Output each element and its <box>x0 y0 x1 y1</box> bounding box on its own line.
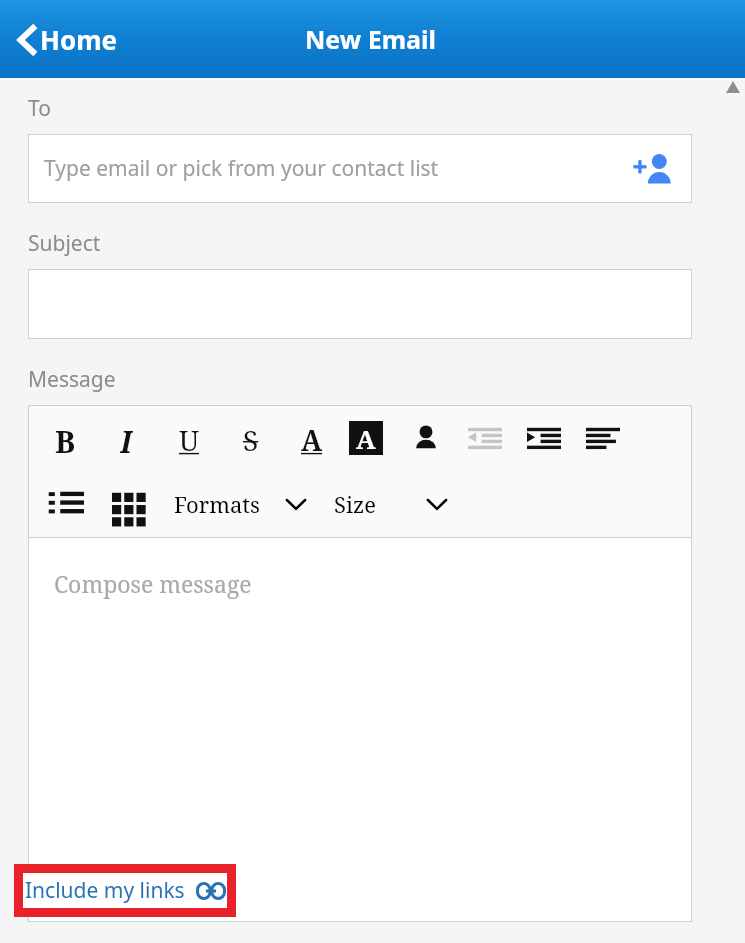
staticText: I <box>120 421 133 455</box>
staticText: Subject <box>28 229 101 258</box>
staticText: B <box>55 421 76 455</box>
button[interactable]: Type email or pick from your contact lis… <box>28 134 692 203</box>
button[interactable]: Align left <box>586 421 620 455</box>
staticText: Type email or pick from your contact lis… <box>44 154 439 183</box>
staticText: U <box>179 421 200 455</box>
staticText: New Email <box>305 22 436 56</box>
staticText: Size <box>334 489 377 519</box>
staticText: S <box>243 421 259 455</box>
button[interactable]: Outdent <box>468 421 502 455</box>
staticText: Include my links <box>25 876 185 905</box>
button[interactable]: Insert person <box>409 421 443 455</box>
button[interactable]: Size <box>334 489 449 519</box>
button[interactable]: Strikethrough <box>234 421 268 455</box>
staticText: Compose message <box>54 568 252 599</box>
staticText: To <box>28 94 51 123</box>
button[interactable]: Pick contact <box>632 147 676 191</box>
button[interactable]: Table <box>112 487 146 521</box>
staticText: A <box>301 421 323 455</box>
staticText: Message <box>28 365 116 394</box>
button[interactable] <box>28 269 692 339</box>
button[interactable]: Bold <box>48 421 82 455</box>
staticText: Formats <box>174 489 260 519</box>
button[interactable]: Italic <box>109 421 143 455</box>
button[interactable]: Highlight <box>349 421 383 455</box>
button[interactable]: Numbered list <box>48 486 84 522</box>
button[interactable]: Include my links <box>23 873 227 908</box>
button[interactable]: Indent <box>527 421 561 455</box>
staticText: A <box>356 421 376 455</box>
button[interactable]: Compose message <box>28 538 692 922</box>
button[interactable]: Underline <box>172 421 206 455</box>
button[interactable]: Formats <box>174 489 308 519</box>
staticText: Home <box>40 22 118 57</box>
button[interactable]: Home <box>10 16 124 63</box>
button[interactable]: Text colour <box>295 421 329 455</box>
